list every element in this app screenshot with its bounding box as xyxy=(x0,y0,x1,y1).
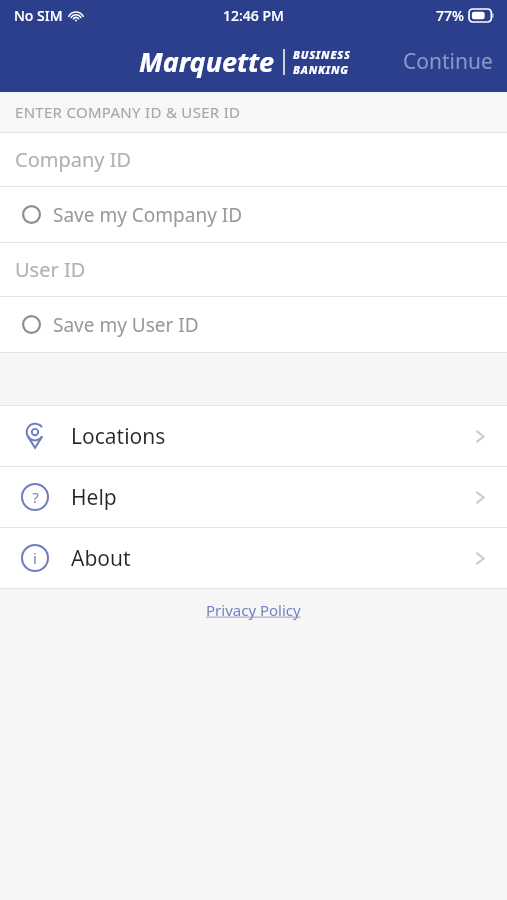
button[interactable]: i xyxy=(0,528,507,588)
button[interactable]: Continue xyxy=(389,35,507,88)
staticText: ENTER COMPANY ID & USER ID xyxy=(15,102,241,122)
staticText: Save my User ID xyxy=(53,312,199,338)
button[interactable]: Locations xyxy=(0,406,507,466)
staticText: Marquette xyxy=(139,43,275,80)
button[interactable]: User ID xyxy=(0,243,507,296)
staticText: BANKING xyxy=(293,62,349,77)
button[interactable]: Save my User ID xyxy=(0,297,507,352)
staticText: BUSINESS xyxy=(293,47,351,62)
staticText: Continue xyxy=(403,47,493,76)
staticText: 12:46 PM xyxy=(223,6,284,25)
staticText: Locations xyxy=(71,422,166,451)
staticText: About xyxy=(71,544,131,573)
staticText: ? xyxy=(32,487,39,507)
staticText: Company ID xyxy=(15,146,132,173)
button[interactable]: ? xyxy=(0,467,507,527)
staticText: Privacy Policy xyxy=(206,600,301,620)
staticText: Save my Company ID xyxy=(53,202,243,228)
button[interactable]: Privacy Policy xyxy=(200,594,307,626)
staticText: No SIM xyxy=(14,6,63,25)
staticText: i xyxy=(33,548,37,568)
button[interactable]: Save my Company ID xyxy=(0,187,507,242)
staticText: User ID xyxy=(15,256,86,283)
button[interactable]: Company ID xyxy=(0,133,507,186)
staticText: 77% xyxy=(436,6,464,25)
staticText: Help xyxy=(71,483,117,512)
